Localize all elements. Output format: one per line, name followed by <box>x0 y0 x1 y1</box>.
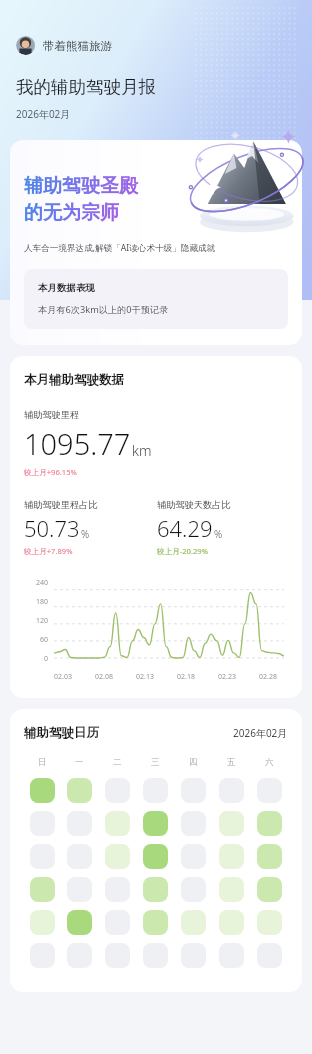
button[interactable]: 日期 <box>219 943 244 968</box>
staticText: 64.29 <box>157 513 213 543</box>
staticText: 本月有6次3km以上的0干预记录 <box>38 303 169 316</box>
staticText: 我的辅助驾驶月报 <box>16 76 156 98</box>
staticText: 二 <box>113 757 122 768</box>
staticText: 较上月+96.15% <box>24 467 77 477</box>
button[interactable]: 日期 <box>181 778 206 803</box>
staticText: 240 <box>24 578 48 588</box>
button[interactable]: 日期 <box>181 844 206 869</box>
button[interactable]: 日期 <box>219 877 244 902</box>
staticText: % <box>214 527 223 541</box>
staticText: % <box>81 527 90 541</box>
staticText: 02.08 <box>95 672 113 682</box>
button[interactable]: 日期 <box>30 844 55 869</box>
staticText: km <box>132 441 152 460</box>
staticText: 辅助驾驶里程占比 <box>24 499 98 511</box>
button[interactable]: 带着熊猫旅游 <box>16 36 118 55</box>
staticText: 本月数据表现 <box>38 282 95 294</box>
button[interactable]: 日期 <box>105 877 130 902</box>
button[interactable]: 日期 <box>143 844 168 869</box>
staticText: 02.18 <box>177 672 195 682</box>
button[interactable]: 日期 <box>67 844 92 869</box>
button[interactable]: 日期 <box>219 811 244 836</box>
staticText: 50.73 <box>24 513 80 543</box>
staticText: 一 <box>75 757 84 768</box>
button[interactable]: 日期 <box>181 811 206 836</box>
staticText: 辅助驾驶里程 <box>24 409 80 421</box>
staticText: 辅助驾驶圣殿 <box>24 174 138 198</box>
button[interactable]: 日期 <box>105 778 130 803</box>
button[interactable]: 日期 <box>67 778 92 803</box>
button[interactable]: 日期 <box>30 811 55 836</box>
button[interactable]: 日期 <box>257 910 282 935</box>
staticText: 五 <box>227 757 236 768</box>
staticText: 日 <box>38 757 47 768</box>
button[interactable]: 日期 <box>67 811 92 836</box>
button[interactable]: 日期 <box>181 910 206 935</box>
button[interactable]: 日期 <box>143 778 168 803</box>
staticText: 02.13 <box>136 672 154 682</box>
button[interactable]: 日期 <box>105 844 130 869</box>
button[interactable]: 日期 <box>257 877 282 902</box>
staticText: 人车合一境界达成,解锁「AI读心术十级」隐藏成就 <box>24 242 216 254</box>
button[interactable]: 日期 <box>219 910 244 935</box>
staticText: 02.28 <box>259 672 277 682</box>
staticText: 1095.77 <box>24 424 131 463</box>
button[interactable]: 日期 <box>181 877 206 902</box>
button[interactable]: 日期 <box>143 877 168 902</box>
button[interactable]: 日期 <box>30 910 55 935</box>
button[interactable]: 日期 <box>143 811 168 836</box>
button[interactable]: 辅助驾驶日历 <box>10 709 302 992</box>
staticText: 2026年02月 <box>16 107 71 121</box>
button[interactable]: 日期 <box>30 877 55 902</box>
staticText: 较上月+7.89% <box>24 546 73 556</box>
button[interactable]: 日期 <box>105 910 130 935</box>
staticText: 三 <box>151 757 160 768</box>
button[interactable]: 日期 <box>67 943 92 968</box>
button[interactable]: 日期 <box>181 943 206 968</box>
button[interactable]: 日期 <box>257 844 282 869</box>
staticText: 2026年02月 <box>233 726 288 740</box>
button[interactable]: 本月辅助驾驶数据 <box>10 356 302 698</box>
staticText: 的无为宗师 <box>24 201 119 225</box>
button[interactable]: 日期 <box>143 910 168 935</box>
staticText: 本月辅助驾驶数据 <box>24 372 124 388</box>
staticText: 带着熊猫旅游 <box>43 39 112 53</box>
staticText: 120 <box>24 616 48 626</box>
button[interactable]: 日期 <box>219 778 244 803</box>
staticText: 四 <box>189 757 198 768</box>
button[interactable]: 辅助驾驶圣殿 <box>10 140 302 345</box>
button[interactable]: 日期 <box>257 943 282 968</box>
button[interactable]: 日期 <box>30 778 55 803</box>
button[interactable]: 日期 <box>219 844 244 869</box>
staticText: 六 <box>265 757 274 768</box>
staticText: 60 <box>24 635 48 645</box>
button[interactable]: 日期 <box>30 943 55 968</box>
button[interactable]: 日期 <box>105 943 130 968</box>
button[interactable]: 日期 <box>105 811 130 836</box>
button[interactable]: 日期 <box>67 877 92 902</box>
staticText: 较上月-20.29% <box>157 546 208 556</box>
staticText: 辅助驾驶天数占比 <box>157 499 231 511</box>
staticText: 0 <box>24 654 48 664</box>
button[interactable]: 日期 <box>257 778 282 803</box>
button[interactable]: 日期 <box>67 910 92 935</box>
staticText: 辅助驾驶日历 <box>24 725 99 741</box>
staticText: 02.23 <box>218 672 236 682</box>
staticText: 180 <box>24 597 48 607</box>
button[interactable]: 日期 <box>257 811 282 836</box>
staticText: 02.03 <box>54 672 72 682</box>
button[interactable]: 日期 <box>143 943 168 968</box>
